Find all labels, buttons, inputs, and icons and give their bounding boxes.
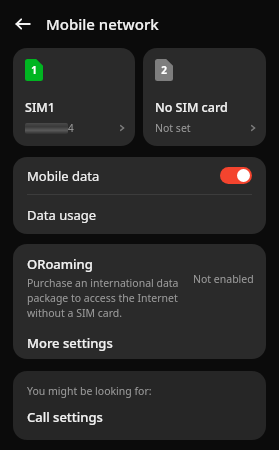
- staticText: 2: [161, 63, 167, 77]
- staticText: ORoaming: [27, 255, 93, 273]
- button[interactable]: More settings: [13, 326, 266, 359]
- button[interactable]: Mobile data toggle: [220, 167, 252, 184]
- staticText: 1: [31, 63, 37, 77]
- button[interactable]: Call settings: [13, 398, 266, 436]
- button[interactable]: Mobile data: [13, 157, 266, 194]
- staticText: Not enabled: [193, 272, 254, 286]
- staticText: You might be looking for:: [27, 384, 152, 398]
- button[interactable]: 2: [143, 48, 266, 146]
- button[interactable]: Data usage: [13, 195, 266, 234]
- staticText: SIM1: [25, 99, 55, 116]
- button[interactable]: Back: [8, 9, 38, 39]
- staticText: Purchase an international data package t…: [27, 276, 187, 320]
- staticText: No SIM card: [155, 99, 228, 116]
- staticText: Data usage: [27, 206, 97, 224]
- staticText: Mobile data: [27, 167, 100, 185]
- staticText: Call settings: [27, 408, 103, 426]
- staticText: More settings: [27, 334, 113, 352]
- button[interactable]: ORoaming: [13, 244, 266, 326]
- staticText: Mobile network: [46, 14, 159, 34]
- staticText: 4: [68, 121, 74, 135]
- button[interactable]: 1: [13, 48, 135, 146]
- staticText: Not set: [155, 121, 191, 135]
